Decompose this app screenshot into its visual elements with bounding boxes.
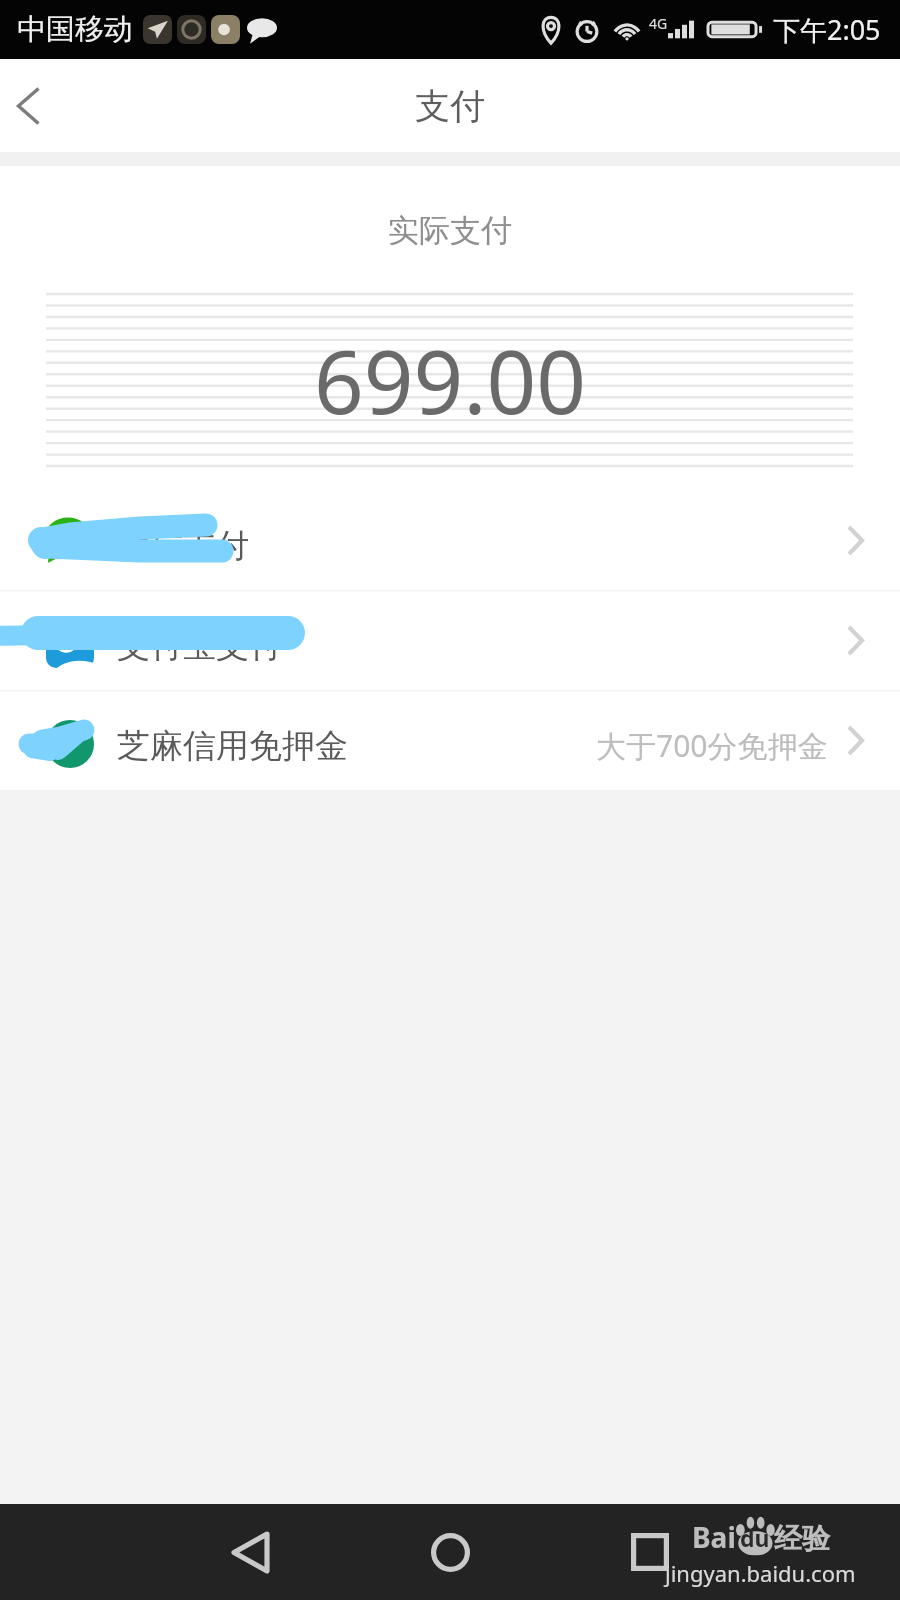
button[interactable]: 微信支付 [0,490,900,590]
staticText: 下午2:05 [773,11,881,48]
staticText: 大于700分免押金 [596,725,828,766]
button[interactable]: 芝麻信用免押金 [0,690,900,790]
staticText: 支付 [415,84,485,128]
button[interactable]: Back [215,1517,285,1587]
button[interactable]: Home [415,1517,485,1587]
staticText: 芝麻信用免押金 [117,725,348,767]
staticText: 支付宝支付 [117,625,282,667]
button[interactable]: 支付宝支付 [0,590,900,690]
button[interactable]: Back [0,59,56,152]
staticText: jingyan.baidu.com [665,1558,856,1588]
staticText: 微信支付 [117,525,249,567]
staticText: 经验 [774,1521,830,1556]
staticText: 中国移动 [17,11,133,48]
button[interactable]: Recents [615,1517,685,1587]
staticText: Bai [692,1518,736,1556]
staticText: 实际支付 [0,211,900,250]
staticText: 699.00 [0,321,900,439]
staticText: 4G [649,14,668,33]
staticText: du [740,1522,770,1553]
